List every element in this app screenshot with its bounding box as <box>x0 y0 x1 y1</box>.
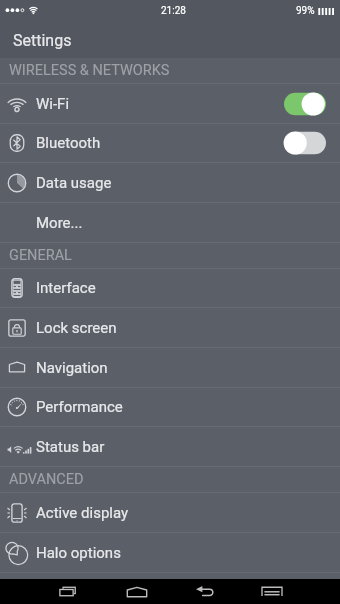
staticText: 21:28 <box>161 5 186 17</box>
staticText: ADVANCED <box>9 471 84 488</box>
staticText: Interface <box>36 279 96 297</box>
button[interactable]: Active display <box>0 493 340 532</box>
button[interactable]: Menu <box>250 579 294 604</box>
button[interactable]: Data usage <box>0 163 340 202</box>
button[interactable]: Wi-Fi <box>0 84 340 123</box>
button[interactable]: Lock screen <box>0 308 340 347</box>
staticText: Bluetooth <box>36 134 101 152</box>
staticText: Navigation <box>36 359 108 377</box>
button[interactable]: Bluetooth <box>0 124 340 162</box>
staticText: Settings <box>13 31 72 50</box>
staticText: More... <box>36 214 83 232</box>
button[interactable]: Navigation <box>0 348 340 387</box>
staticText: Lock screen <box>36 319 117 337</box>
button[interactable]: Back <box>183 579 227 604</box>
staticText: Data usage <box>36 174 112 192</box>
button[interactable]: Interface <box>0 269 340 307</box>
button[interactable]: Status bar <box>0 427 340 466</box>
button[interactable]: Recents <box>47 579 91 604</box>
button[interactable]: Halo options <box>0 533 340 572</box>
staticText: WIRELESS & NETWORKS <box>9 62 170 79</box>
staticText: Status bar <box>36 438 105 456</box>
staticText: Active display <box>36 504 129 522</box>
staticText: Performance <box>36 398 123 416</box>
button[interactable]: Home <box>115 579 159 604</box>
staticText: Halo options <box>36 544 121 562</box>
button[interactable]: Performance <box>0 388 340 426</box>
staticText: GENERAL <box>9 247 72 264</box>
button[interactable]: More... <box>0 203 340 242</box>
staticText: 99% <box>296 5 315 17</box>
staticText: Wi-Fi <box>36 95 70 113</box>
